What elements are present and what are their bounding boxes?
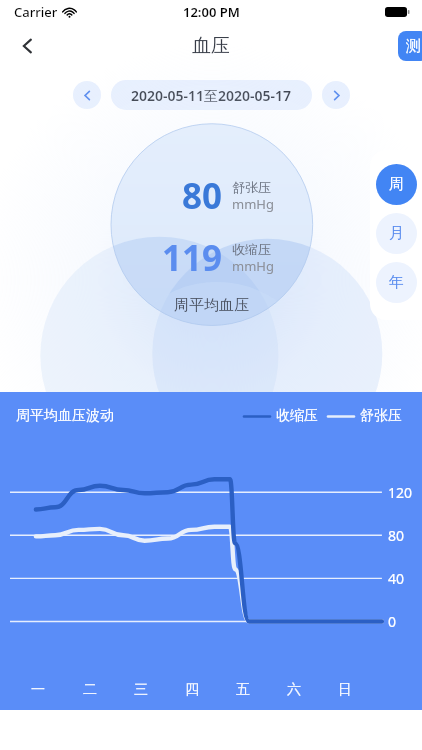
staticText: mmHg: [232, 195, 274, 213]
button[interactable]: 周: [376, 164, 417, 205]
staticText: 四: [185, 681, 199, 699]
button[interactable]: Next week: [322, 81, 350, 109]
button[interactable]: 三: [115, 670, 166, 710]
button[interactable]: 月: [376, 213, 417, 254]
staticText: 收缩压: [276, 407, 318, 425]
button[interactable]: 六: [268, 670, 319, 710]
button[interactable]: 2020-05-11至2020-05-17: [111, 80, 312, 110]
staticText: 收缩压: [232, 241, 271, 257]
staticText: 80: [388, 526, 405, 545]
staticText: 周: [389, 175, 404, 194]
staticText: 2020-05-11至2020-05-17: [131, 86, 292, 105]
button[interactable]: 年: [376, 262, 417, 303]
staticText: 三: [134, 681, 148, 699]
staticText: 80: [182, 172, 223, 220]
button[interactable]: 一: [12, 670, 64, 710]
button[interactable]: 日: [319, 670, 370, 710]
staticText: mmHg: [232, 257, 274, 275]
staticText: 0: [388, 612, 397, 631]
staticText: 119: [162, 234, 223, 282]
staticText: 舒张压: [232, 179, 271, 195]
staticText: 40: [388, 569, 405, 588]
button[interactable]: Back: [8, 26, 48, 66]
button[interactable]: 五: [217, 670, 268, 710]
staticText: 二: [83, 681, 97, 699]
button[interactable]: Measure: [398, 31, 422, 61]
staticText: 五: [236, 681, 250, 699]
staticText: 120: [388, 483, 413, 502]
staticText: 周平均血压: [174, 296, 249, 315]
staticText: 月: [389, 224, 404, 243]
staticText: 周平均血压波动: [16, 407, 114, 425]
staticText: 舒张压: [360, 407, 402, 425]
staticText: 血压: [192, 34, 230, 58]
button[interactable]: 二: [64, 670, 115, 710]
staticText: 日: [338, 681, 352, 699]
button[interactable]: Previous week: [73, 81, 101, 109]
staticText: 12:00 PM: [183, 3, 240, 21]
staticText: 一: [31, 681, 45, 699]
staticText: 六: [287, 681, 301, 699]
staticText: 年: [389, 273, 404, 292]
staticText: Carrier: [14, 3, 58, 21]
button[interactable]: 四: [166, 670, 217, 710]
staticText: 测: [406, 37, 421, 56]
